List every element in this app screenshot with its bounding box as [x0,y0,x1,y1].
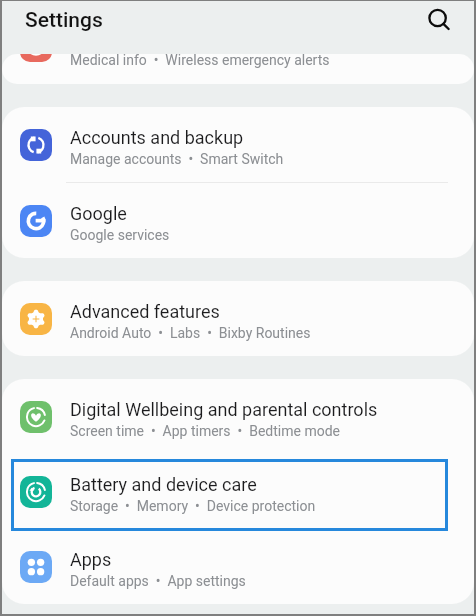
staticText: Google services [70,227,170,243]
staticText: Android Auto • Labs • Bixby Routines [70,325,311,341]
staticText: Manage accounts • Smart Switch [70,151,284,167]
button[interactable]: Advanced features [2,281,474,356]
staticText: Default apps • App settings [70,573,246,589]
staticText: Storage • Memory • Device protection [70,498,316,514]
button[interactable]: Google [2,183,474,258]
button[interactable]: Battery and device care [2,454,474,529]
button[interactable]: Search [425,4,451,30]
button[interactable]: Digital Wellbeing and parental controls [2,379,474,454]
button[interactable]: Settings [25,8,103,33]
staticText: Medical info • Wireless emergency alerts [70,54,330,68]
staticText: Battery and device care [70,474,257,495]
button[interactable]: Safety and emergency [2,54,474,83]
staticText: Accounts and backup [70,127,244,148]
staticText: Digital Wellbeing and parental controls [70,399,378,420]
staticText: Google [70,203,127,224]
button[interactable]: Apps [2,529,474,604]
staticText: Advanced features [70,301,220,322]
button[interactable]: Accounts and backup [2,107,474,182]
staticText: Apps [70,549,112,570]
staticText: Screen time • App timers • Bedtime mode [70,423,340,439]
